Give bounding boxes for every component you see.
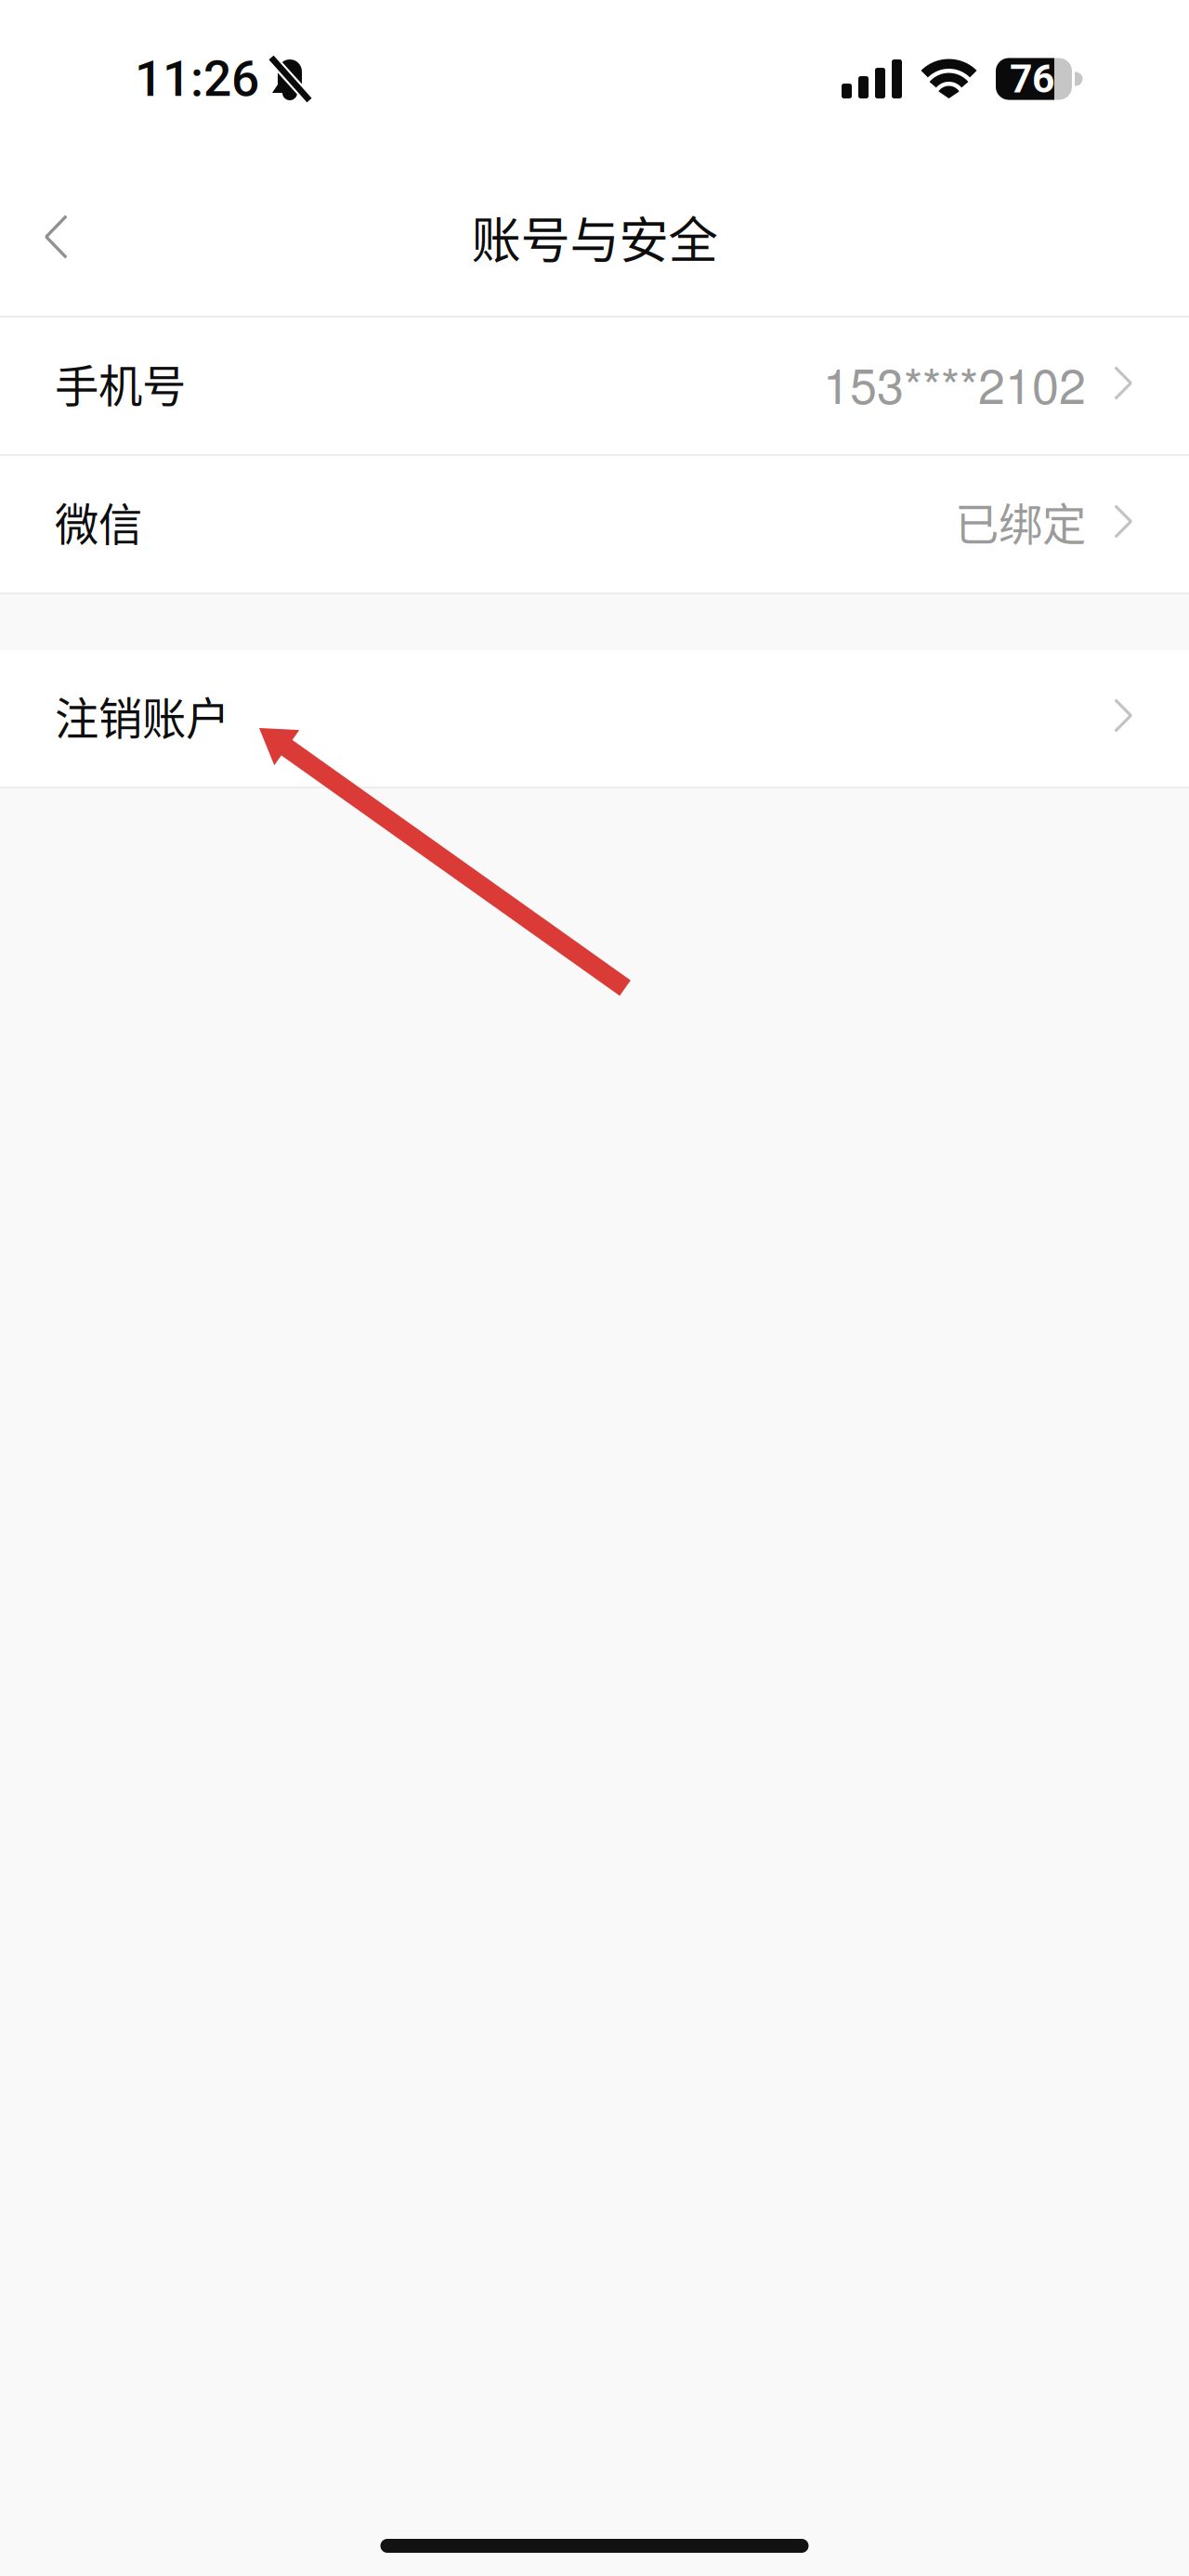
staticText: 76 <box>1010 56 1054 102</box>
button[interactable]: 注销账户 <box>0 650 1189 787</box>
staticText: 注销账户 <box>55 684 229 747</box>
staticText: 账号与安全 <box>471 201 718 273</box>
staticText: 已绑定 <box>955 490 1086 553</box>
staticText: 手机号 <box>55 351 186 415</box>
staticText: 微信 <box>55 490 142 553</box>
button[interactable]: 微信 <box>0 456 1189 592</box>
button[interactable]: 手机号 <box>0 318 1189 454</box>
button[interactable]: Back <box>0 176 112 297</box>
staticText: 153****2102 <box>823 349 1086 418</box>
staticText: 11:26 <box>135 50 259 108</box>
